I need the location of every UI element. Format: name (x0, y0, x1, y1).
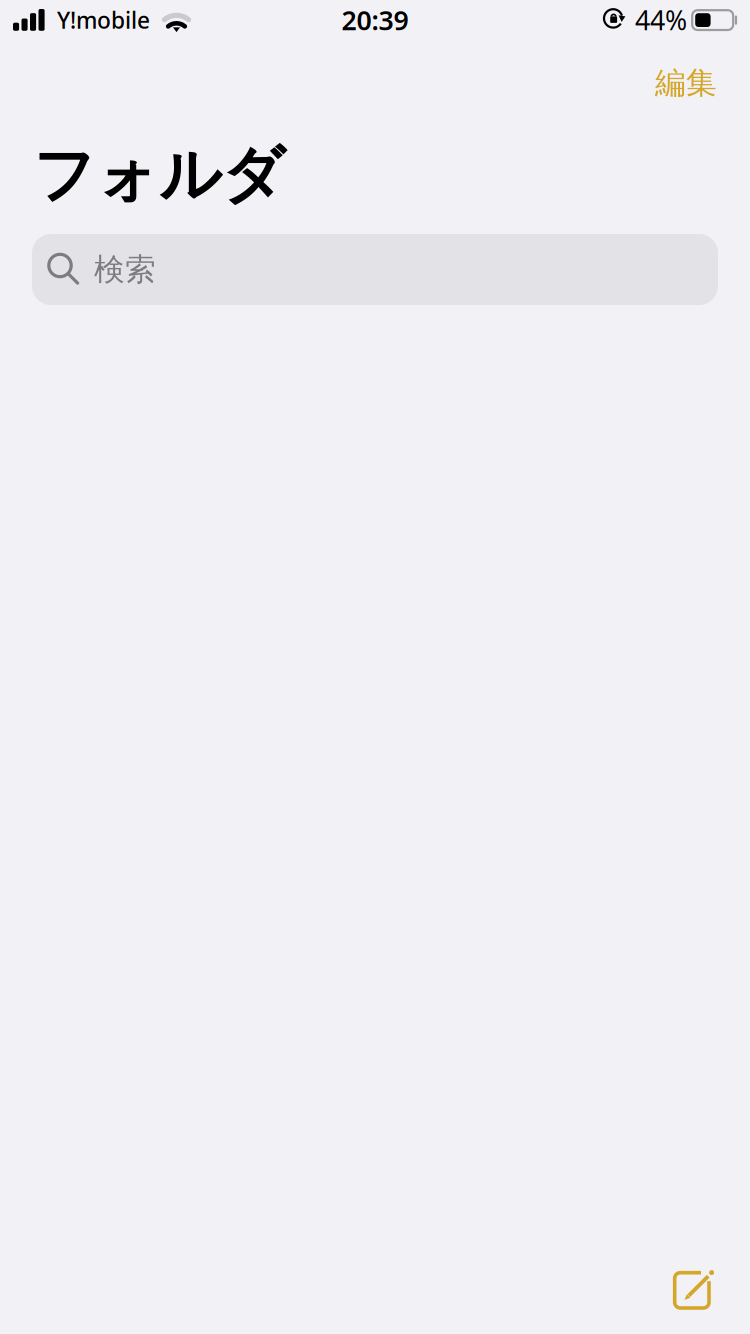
staticText: 編集 (655, 64, 717, 102)
staticText: フォルダ (33, 137, 285, 213)
staticText: 20:39 (341, 2, 408, 38)
button[interactable]: 編集 (640, 55, 732, 111)
button[interactable]: 検索 (32, 234, 718, 305)
staticText: 検索 (94, 251, 156, 288)
staticText: 44% (635, 2, 687, 38)
staticText: Y!mobile (57, 5, 150, 35)
button[interactable]: 新規メモ (655, 1253, 731, 1328)
